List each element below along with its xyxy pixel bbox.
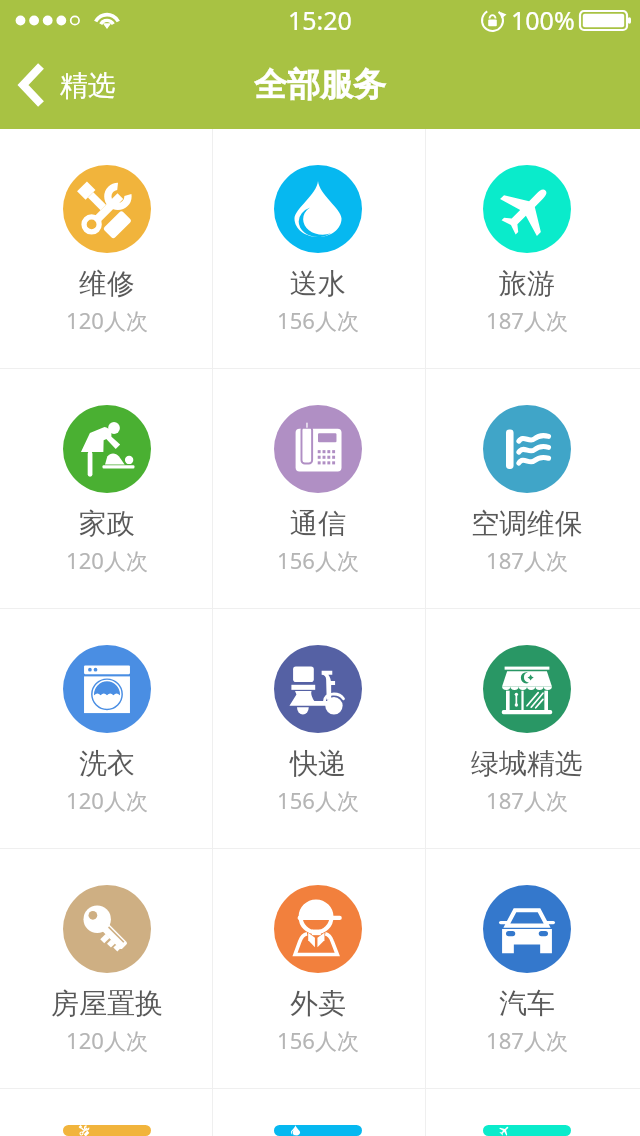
button[interactable]: 通信 — [213, 369, 425, 609]
staticText: 120人次 — [66, 1025, 148, 1055]
staticText: 187人次 — [486, 545, 568, 575]
button[interactable]: 绿城精选 — [426, 609, 640, 849]
staticText: 187人次 — [486, 1025, 568, 1055]
staticText: 汽车 — [499, 986, 555, 1021]
staticText: 房屋置换 — [51, 986, 163, 1021]
staticText: 156人次 — [277, 305, 359, 335]
button[interactable]: 空调维保 — [426, 369, 640, 609]
button[interactable]: 旅游 — [426, 129, 640, 369]
staticText: 快递 — [290, 746, 346, 781]
button[interactable]: 外卖 — [213, 849, 425, 1089]
button[interactable]: 旅游 — [426, 1089, 640, 1136]
staticText: 120人次 — [66, 785, 148, 815]
staticText: 187人次 — [486, 305, 568, 335]
button[interactable]: 维修 — [0, 129, 212, 369]
staticText: 家政 — [79, 506, 135, 541]
button[interactable]: 洗衣 — [0, 609, 212, 849]
staticText: 187人次 — [486, 785, 568, 815]
button[interactable]: Back to 精选 — [0, 54, 134, 116]
staticText: 100% — [511, 3, 575, 37]
button[interactable]: 房屋置换 — [0, 849, 212, 1089]
staticText: 15:20 — [288, 3, 352, 37]
staticText: 全部服务 — [254, 64, 386, 106]
button[interactable]: 送水 — [213, 129, 425, 369]
button[interactable]: 汽车 — [426, 849, 640, 1089]
staticText: 外卖 — [290, 986, 346, 1021]
staticText: 156人次 — [277, 545, 359, 575]
staticText: 120人次 — [66, 545, 148, 575]
staticText: 旅游 — [499, 266, 555, 301]
staticText: 送水 — [290, 266, 346, 301]
button[interactable]: 送水 — [213, 1089, 425, 1136]
staticText: 空调维保 — [471, 506, 583, 541]
staticText: 156人次 — [277, 785, 359, 815]
staticText: 维修 — [79, 266, 135, 301]
staticText: 通信 — [290, 506, 346, 541]
button[interactable]: 家政 — [0, 369, 212, 609]
staticText: 绿城精选 — [471, 746, 583, 781]
staticText: 120人次 — [66, 305, 148, 335]
staticText: 156人次 — [277, 1025, 359, 1055]
staticText: 精选 — [60, 68, 116, 103]
button[interactable]: 快递 — [213, 609, 425, 849]
staticText: 洗衣 — [79, 746, 135, 781]
button[interactable]: 维修 — [0, 1089, 212, 1136]
